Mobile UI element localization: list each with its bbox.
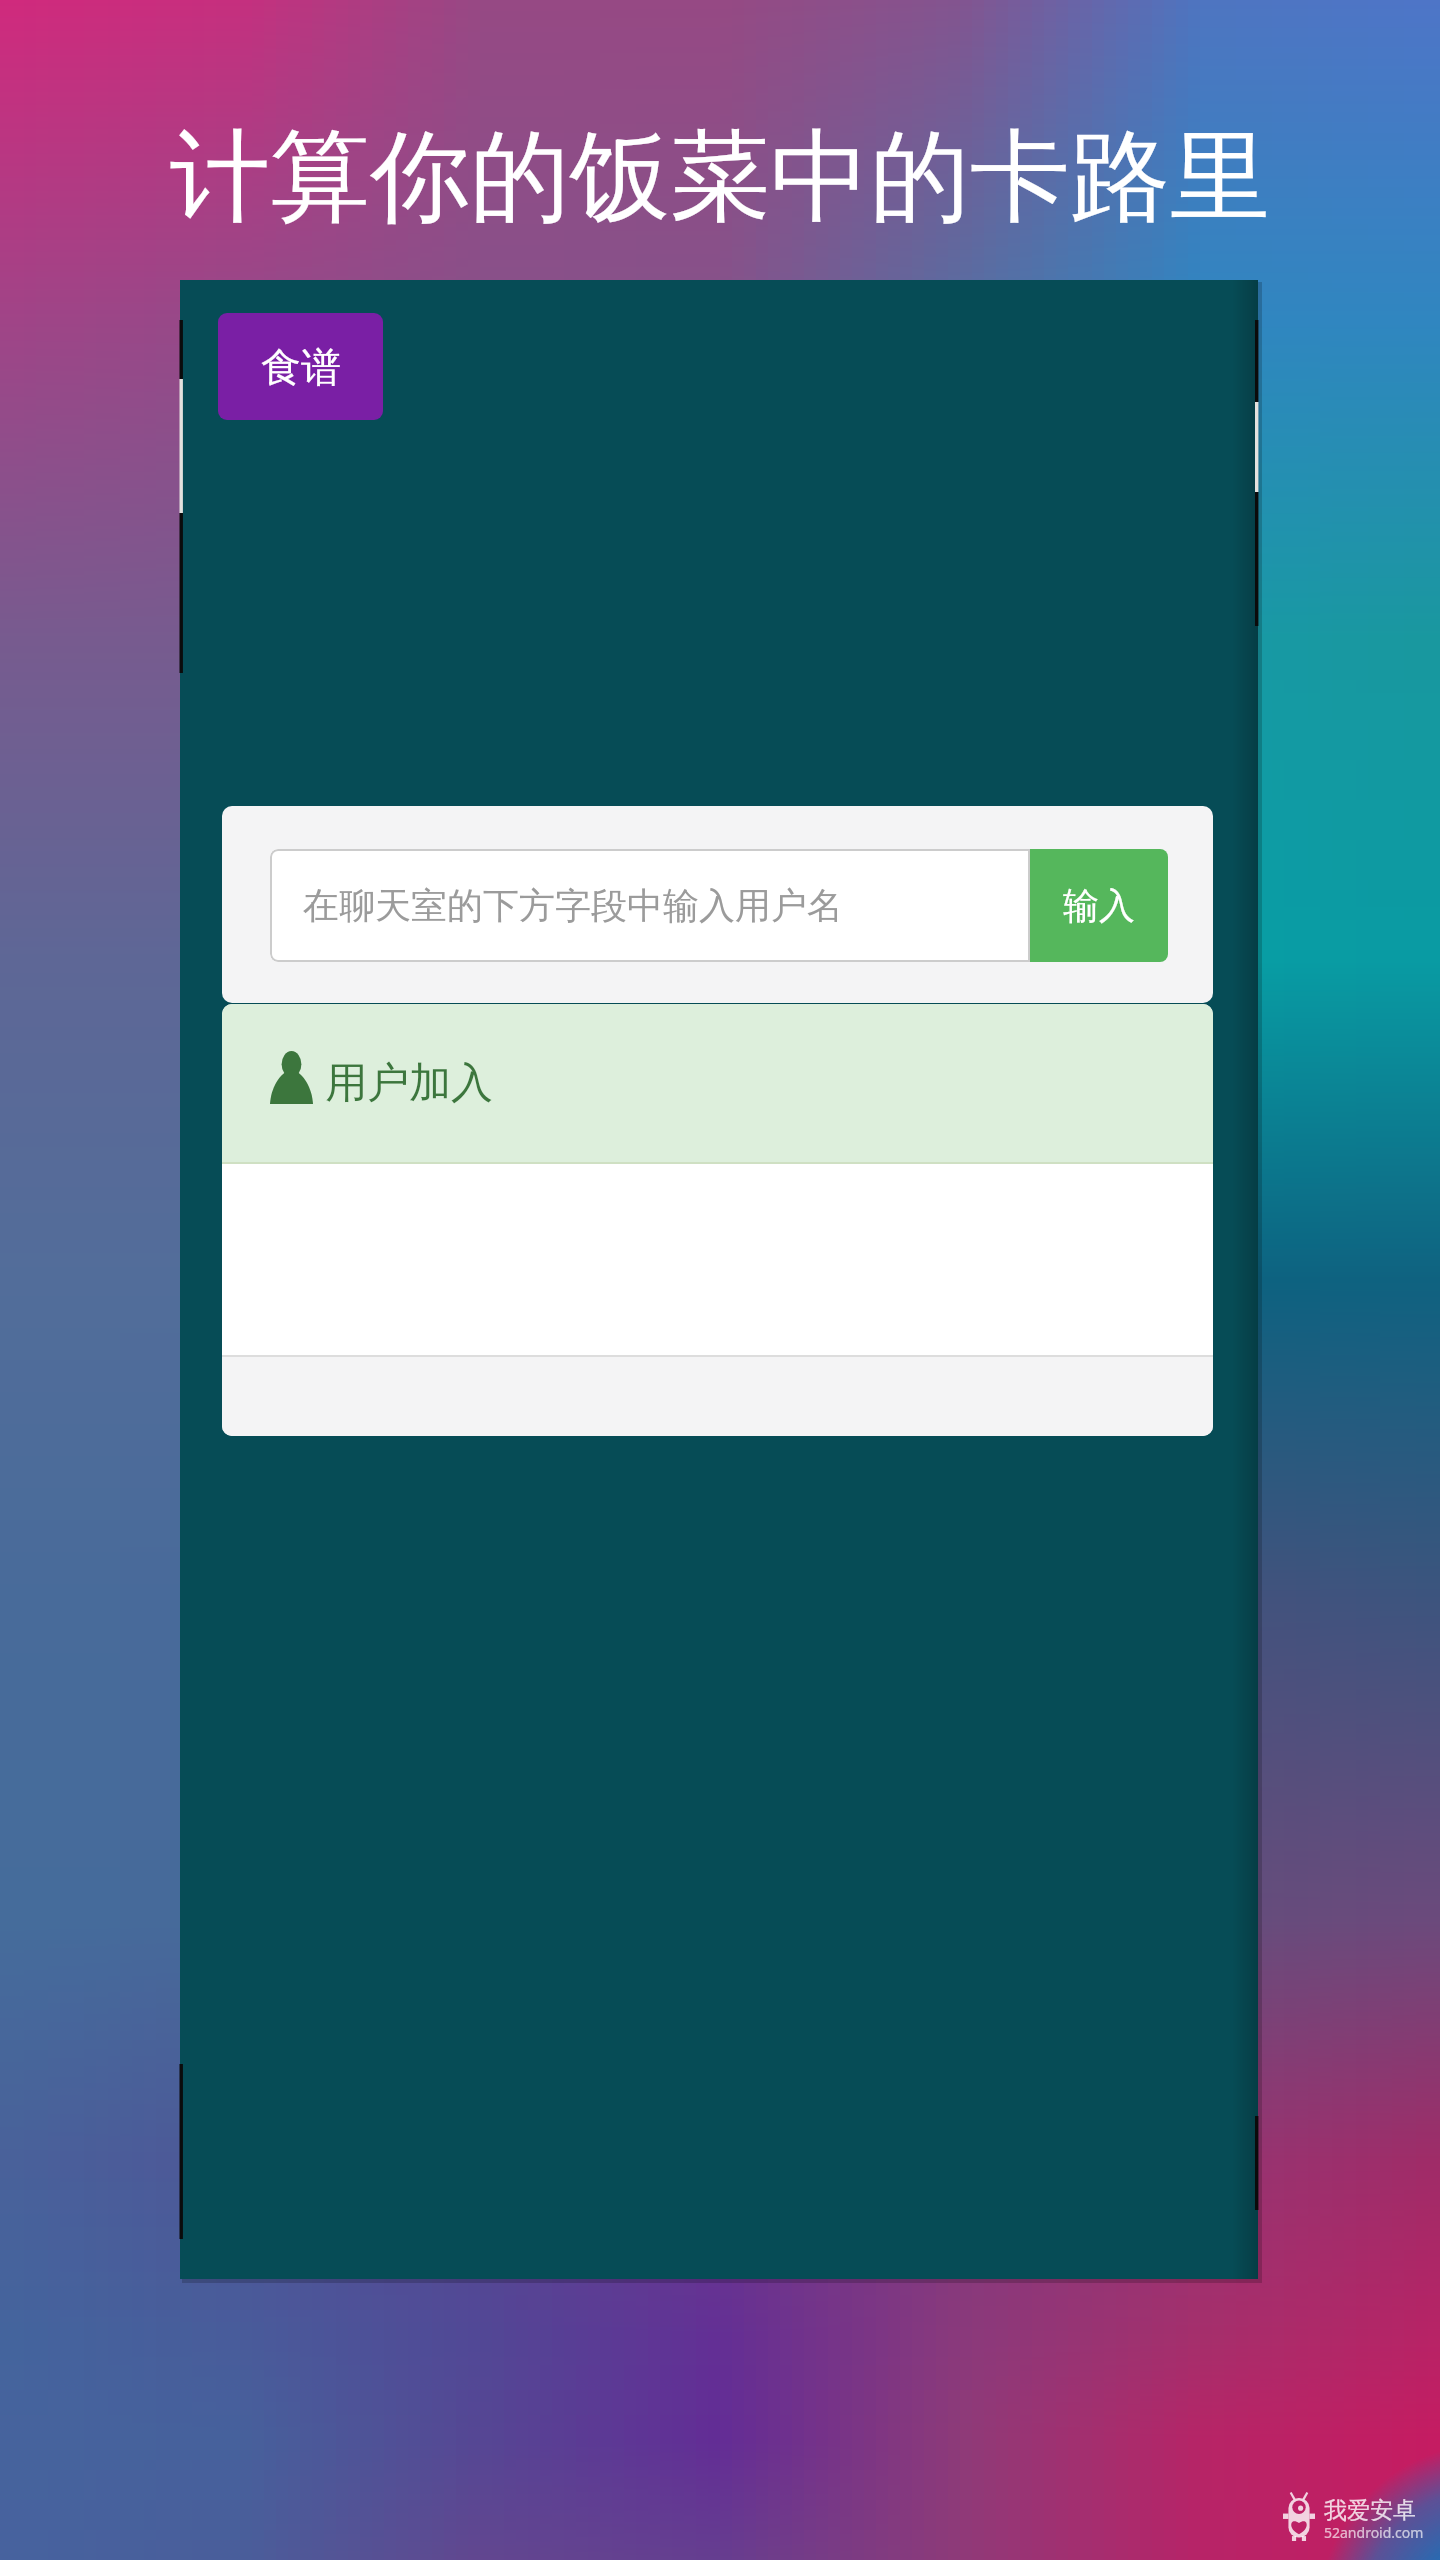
staticText: 计算你的饭菜中的卡路里 — [170, 115, 1270, 241]
button[interactable]: 在聊天室的下方字段中输入用户名 — [270, 849, 1030, 962]
staticText: 食谱 — [261, 342, 341, 392]
staticText: 在聊天室的下方字段中输入用户名 — [303, 883, 843, 928]
button[interactable]: 输入 — [1030, 849, 1168, 962]
other: 52android.com — [1283, 2492, 1315, 2541]
button[interactable]: User — [222, 1004, 1213, 1162]
staticText: 我爱安卓 — [1324, 2496, 1416, 2525]
button[interactable]: 食谱 — [218, 313, 383, 420]
staticText: 输入 — [1063, 883, 1135, 928]
staticText: 用户加入 — [325, 1057, 493, 1110]
other: User — [270, 1051, 313, 1104]
button[interactable] — [222, 1357, 1213, 1436]
staticText: 52android.com — [1324, 2523, 1424, 2542]
